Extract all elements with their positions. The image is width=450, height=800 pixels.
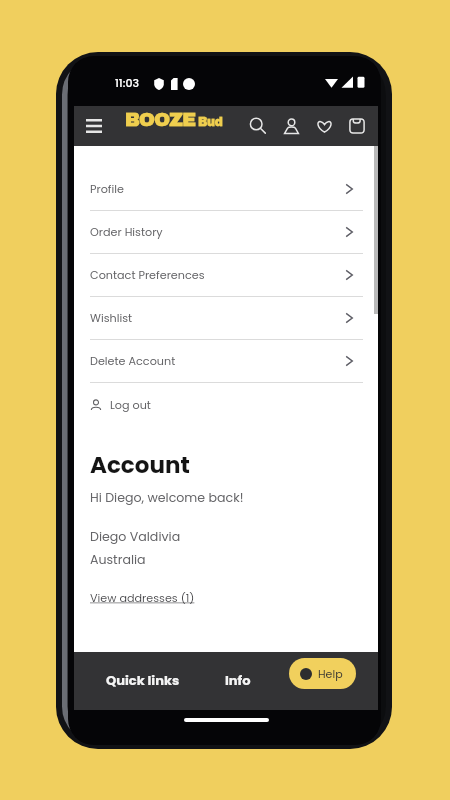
button[interactable]: BOOZE	[125, 109, 223, 130]
button[interactable]: Delete Account	[90, 340, 363, 382]
button[interactable]: Wishlist	[308, 110, 340, 142]
button[interactable]: Search	[242, 110, 274, 142]
staticText: Quick links	[106, 671, 180, 689]
staticText: Profile	[90, 181, 124, 197]
staticText: View addresses (1)	[90, 590, 195, 606]
staticText: Australia	[90, 551, 146, 569]
staticText: Bud	[198, 115, 223, 128]
staticText: Delete Account	[90, 353, 176, 369]
button[interactable]: View addresses (1)	[90, 590, 195, 606]
button[interactable]: Quick links	[106, 671, 180, 689]
button[interactable]: Profile	[90, 168, 363, 210]
staticText: Contact Preferences	[90, 267, 205, 283]
staticText: Diego Valdivia	[90, 528, 181, 546]
staticText: Account	[90, 449, 190, 481]
staticText: Wishlist	[90, 310, 133, 326]
button[interactable]: Account	[275, 110, 307, 142]
button[interactable]: Contact Preferences	[90, 254, 363, 296]
button[interactable]: Shopping bag	[341, 110, 373, 142]
button[interactable]: Wishlist	[90, 297, 363, 339]
staticText: Hi Diego, welcome back!	[90, 489, 244, 507]
button[interactable]: Open navigation menu	[78, 110, 109, 141]
button[interactable]: Help	[289, 658, 356, 689]
staticText: BOOZE	[125, 109, 196, 130]
staticText: Info	[225, 671, 251, 689]
button[interactable]: Info	[225, 671, 251, 689]
staticText: Help	[318, 666, 343, 681]
staticText: 11:03	[115, 75, 139, 90]
button[interactable]: Log out	[90, 383, 363, 426]
staticText: Order History	[90, 224, 163, 240]
button[interactable]: Order History	[90, 211, 363, 253]
staticText: Log out	[110, 397, 151, 413]
